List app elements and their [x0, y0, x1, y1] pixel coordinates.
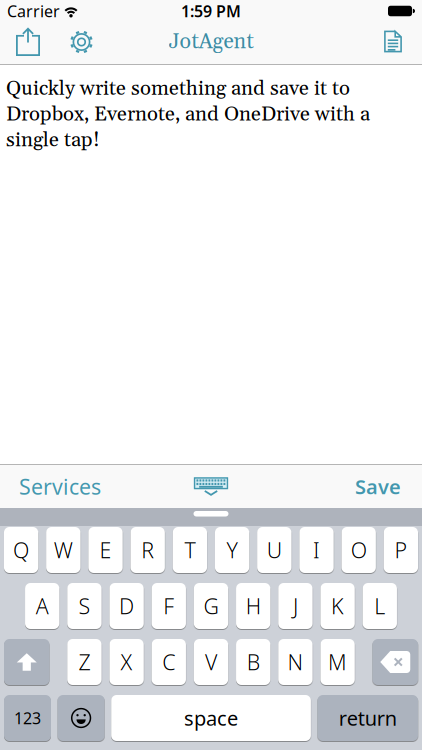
button[interactable]: S [67, 583, 101, 629]
button[interactable]: K [320, 583, 355, 629]
button[interactable]: Numbers [4, 695, 51, 741]
staticText: A [36, 592, 49, 620]
staticText: 1:59 PM [181, 0, 241, 22]
staticText: I [313, 536, 320, 564]
staticText: D [119, 592, 134, 620]
button[interactable]: Services [0, 472, 101, 501]
button[interactable]: T [173, 527, 207, 573]
button[interactable]: Y [215, 527, 249, 573]
staticText: N [287, 648, 303, 676]
button[interactable]: Z [67, 639, 101, 685]
button[interactable]: Settings [40, 30, 93, 55]
staticText: space [184, 705, 238, 731]
button[interactable]: B [236, 639, 270, 685]
staticText: JotAgent [168, 28, 253, 56]
button[interactable]: Emoji [58, 695, 105, 741]
button[interactable]: Q [4, 527, 38, 573]
staticText: return [339, 705, 397, 731]
button[interactable]: Save [355, 473, 422, 500]
staticText: H [246, 592, 261, 620]
button[interactable]: N [278, 639, 312, 685]
button[interactable]: L [363, 583, 397, 629]
staticText: U [267, 536, 282, 564]
staticText: F [163, 592, 174, 620]
button[interactable]: Dismiss Keyboard [194, 477, 228, 496]
button[interactable]: H [236, 583, 270, 629]
button[interactable]: J [278, 583, 312, 629]
staticText: J [293, 592, 298, 620]
staticText: T [184, 536, 195, 564]
staticText: V [205, 648, 217, 676]
staticText: K [331, 592, 344, 620]
staticText: Carrier [7, 0, 60, 22]
staticText: 123 [14, 707, 41, 729]
button[interactable]: I [299, 527, 334, 573]
button[interactable]: X [109, 639, 144, 685]
button[interactable]: P [384, 527, 418, 573]
button[interactable]: Share [0, 28, 40, 58]
staticText: B [247, 648, 260, 676]
button[interactable]: D [109, 583, 144, 629]
button[interactable]: U [257, 527, 291, 573]
staticText: O [351, 536, 367, 564]
button[interactable]: space [111, 695, 311, 741]
button[interactable]: R [130, 527, 165, 573]
button[interactable]: V [194, 639, 228, 685]
button[interactable]: C [152, 639, 186, 685]
staticText: W [54, 536, 73, 564]
button[interactable]: A [25, 583, 59, 629]
button[interactable]: E [88, 527, 123, 573]
staticText: X [121, 648, 133, 676]
button[interactable]: return [317, 695, 418, 741]
button[interactable]: F [152, 583, 186, 629]
staticText: Y [227, 536, 238, 564]
staticText: G [203, 592, 218, 620]
staticText: Z [78, 648, 90, 676]
button[interactable]: O [341, 527, 376, 573]
button[interactable]: Shift [4, 639, 49, 685]
staticText: L [374, 592, 385, 620]
staticText: Save [355, 473, 401, 500]
button[interactable]: G [194, 583, 228, 629]
staticText: E [99, 536, 111, 564]
button[interactable]: M [320, 639, 355, 685]
staticText: Quickly write something and save it to D… [6, 76, 370, 153]
staticText: S [78, 592, 90, 620]
staticText: Q [13, 536, 29, 564]
staticText: M [328, 648, 347, 676]
button[interactable]: New Document [384, 30, 422, 55]
button[interactable]: W [46, 527, 80, 573]
button[interactable]: Delete [372, 639, 418, 685]
staticText: Services [19, 472, 101, 501]
staticText: P [394, 536, 407, 564]
staticText: R [141, 536, 154, 564]
staticText: C [162, 648, 175, 676]
